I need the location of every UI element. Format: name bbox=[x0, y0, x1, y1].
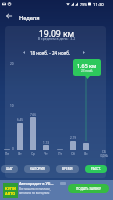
button[interactable]: РАССТ. bbox=[85, 165, 107, 173]
staticText: автозаем по выгодным bbox=[19, 191, 50, 195]
button[interactable]: Next week bbox=[79, 48, 88, 57]
staticText: КУПИ bbox=[5, 186, 16, 191]
staticText: Пн bbox=[0, 152, 14, 156]
staticText: 23 нояб. bbox=[81, 69, 94, 73]
staticText: 79% bbox=[80, 2, 88, 7]
staticText: 0 bbox=[12, 147, 14, 151]
staticText: Автокредит в УБ... bbox=[19, 181, 54, 186]
button[interactable]: КАЛОРИЯ bbox=[24, 165, 50, 173]
staticText: ВРЕМЯ bbox=[62, 167, 73, 171]
staticText: 6.45 bbox=[13, 118, 27, 122]
staticText: Чт bbox=[39, 152, 53, 156]
staticText: 2.19 bbox=[66, 136, 80, 140]
staticText: КАЛОРИЯ bbox=[30, 167, 45, 171]
button[interactable]: Previous week bbox=[19, 48, 28, 57]
staticText: 19.09 км bbox=[0, 28, 113, 40]
staticText: АВТО bbox=[5, 191, 16, 196]
staticText: 7.66 bbox=[26, 113, 40, 117]
staticText: 11:30 bbox=[93, 2, 104, 8]
staticText: РАССТ. bbox=[91, 167, 102, 171]
staticText: Вт bbox=[13, 152, 27, 156]
staticText: Вс bbox=[79, 152, 93, 156]
staticText: ШАГ bbox=[6, 167, 13, 171]
staticText: 20 bbox=[10, 62, 14, 66]
button[interactable]: ВРЕМЯ bbox=[56, 165, 79, 173]
staticText: Пт bbox=[53, 152, 67, 156]
staticText: Все машины в наличии, bbox=[19, 187, 51, 191]
staticText: Ср bbox=[26, 152, 40, 156]
button[interactable]: ШАГ bbox=[1, 165, 18, 173]
staticText: Неделя bbox=[19, 14, 40, 22]
staticText: 18 нояб. - 24 нояб. bbox=[30, 50, 71, 56]
staticText: ПОДАТЬ ЗАЯВКУ bbox=[76, 187, 101, 191]
staticText: 1.13 bbox=[39, 141, 53, 145]
staticText: 1.65 км bbox=[77, 62, 97, 69]
staticText: В среднем в день: 3.2 bbox=[0, 36, 113, 41]
button[interactable]: Back bbox=[2, 9, 15, 22]
staticText: ОДНА bbox=[97, 154, 111, 158]
staticText: СБ bbox=[97, 150, 111, 154]
button[interactable]: ПОДАТЬ ЗАЯВКУ bbox=[68, 184, 109, 193]
staticText: 10 bbox=[10, 104, 14, 108]
staticText: Сб bbox=[66, 152, 80, 156]
